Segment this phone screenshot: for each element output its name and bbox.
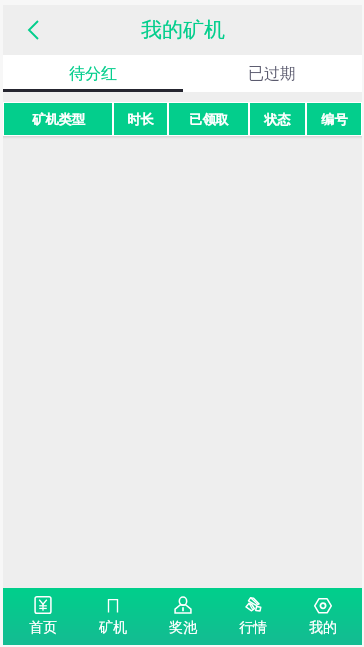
staticText: 我的 (309, 619, 337, 637)
staticText: 我的矿机 (141, 17, 225, 43)
button[interactable]: 行情 (218, 588, 288, 645)
button[interactable]: 状态 (250, 103, 305, 135)
staticText: 矿机 (99, 619, 127, 637)
button[interactable]: 矿机 (78, 588, 148, 645)
button[interactable]: 我的 (288, 588, 358, 645)
staticText: 已过期 (248, 64, 296, 84)
button[interactable]: 首页 (8, 588, 78, 645)
staticText: 已领取 (189, 111, 229, 128)
button[interactable]: 待分红 (3, 55, 182, 92)
button[interactable]: 时长 (114, 103, 167, 135)
staticText: 行情 (239, 619, 267, 637)
staticText: 编号 (321, 111, 348, 128)
button[interactable]: Back (14, 11, 52, 49)
button[interactable]: 奖池 (148, 588, 218, 645)
staticText: 待分红 (69, 64, 117, 84)
button[interactable]: 已过期 (182, 55, 362, 92)
staticText: 时长 (127, 111, 154, 128)
staticText: 状态 (264, 111, 291, 128)
button[interactable]: 编号 (307, 103, 361, 135)
staticText: 矿机类型 (32, 111, 85, 128)
staticText: 首页 (29, 619, 57, 637)
staticText: 奖池 (169, 619, 197, 637)
button[interactable]: 已领取 (169, 103, 248, 135)
button[interactable]: 矿机类型 (4, 103, 112, 135)
